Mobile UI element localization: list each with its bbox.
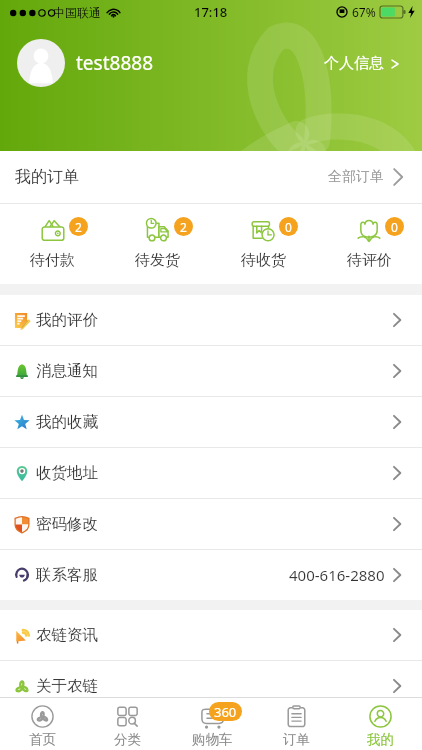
button[interactable]: 农链资讯 [0,610,422,660]
staticText: 我的收藏 [36,412,98,432]
button[interactable]: 0 [316,204,422,284]
staticText: 密码修改 [36,514,98,534]
staticText: 中国联通 [53,5,101,20]
button[interactable]: 分类 [85,698,170,750]
staticText: 待收货 [241,251,286,270]
staticText: 0 [391,219,398,235]
button[interactable]: 订单 [254,698,338,750]
staticText: 分类 [114,731,141,748]
button[interactable]: 我的收藏 [0,397,422,447]
staticText: 67% [352,4,376,20]
button[interactable]: 关于农链 [0,661,422,711]
staticText: 关于农链 [36,676,98,696]
button[interactable]: 消息通知 [0,346,422,396]
staticText: 农链资讯 [36,625,98,645]
button[interactable]: 首页 [0,698,85,750]
staticText: 首页 [29,731,56,748]
button[interactable]: 个人信息 [320,50,404,77]
staticText: 我的评价 [36,310,98,330]
staticText: 消息通知 [36,361,98,381]
staticText: 全部订单 [328,168,384,186]
staticText: 联系客服 [36,565,98,585]
button[interactable]: 联系客服 [0,550,422,600]
button[interactable]: 2 [105,204,210,284]
staticText: 购物车 [192,731,233,748]
button[interactable]: 360 [170,698,254,750]
staticText: 我的 [367,731,394,748]
staticText: test8888 [76,50,154,76]
staticText: 0 [285,219,292,235]
button[interactable]: Avatar [17,39,65,87]
staticText: 待发货 [135,251,180,270]
staticText: 我的订单 [15,167,79,187]
staticText: 17:18 [194,3,228,21]
staticText: 待付款 [30,251,75,270]
staticText: 2 [75,219,82,235]
button[interactable]: 2 [0,204,105,284]
staticText: 待评价 [347,251,392,270]
staticText: 订单 [283,731,310,748]
button[interactable]: 我的订单 [0,151,422,203]
button[interactable]: 收货地址 [0,448,422,498]
button[interactable]: 0 [210,204,316,284]
staticText: 收货地址 [36,463,98,483]
button[interactable]: 我的评价 [0,295,422,345]
staticText: 400-616-2880 [289,565,385,585]
button[interactable]: 我的 [338,698,422,750]
button[interactable]: 密码修改 [0,499,422,549]
staticText: 个人信息 [324,54,384,73]
staticText: 360 [214,703,237,721]
staticText: 2 [180,219,187,235]
